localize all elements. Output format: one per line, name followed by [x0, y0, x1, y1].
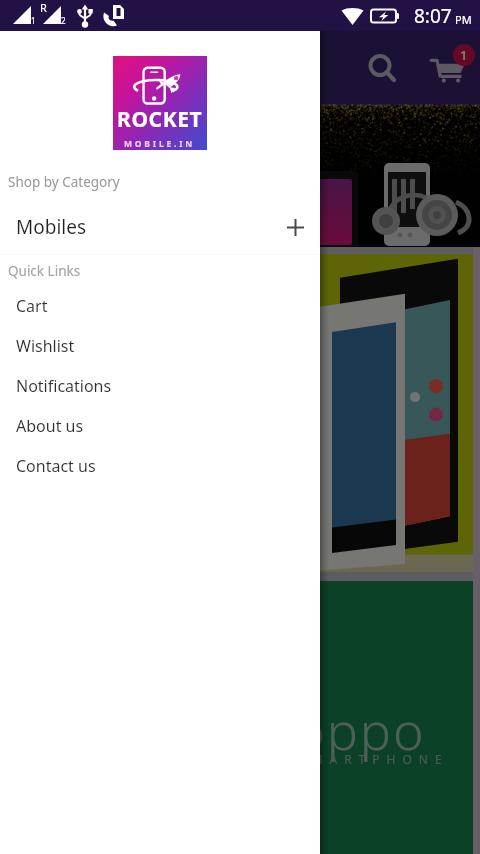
button[interactable]: Mobiles	[0, 208, 320, 246]
staticText: Mobiles	[16, 214, 87, 240]
button[interactable]: Wishlist	[0, 326, 320, 366]
staticText: Shop by Category	[8, 173, 120, 191]
staticText: About us	[16, 415, 84, 437]
staticText: oppo	[294, 694, 426, 765]
button[interactable]: Search	[358, 44, 406, 92]
staticText: R	[40, 0, 47, 15]
button[interactable]: Notifications	[0, 366, 320, 406]
staticText: Wishlist	[16, 335, 75, 357]
staticText: MOBILE.IN	[124, 138, 196, 150]
staticText: 1	[31, 15, 36, 26]
button[interactable]: About us	[0, 406, 320, 446]
button[interactable]: Shopping cart	[424, 44, 472, 92]
staticText: Contact us	[16, 455, 96, 477]
staticText: 1	[460, 46, 468, 64]
staticText: Quick Links	[8, 262, 81, 280]
staticText: Notifications	[16, 375, 112, 397]
staticText: 8:07	[414, 3, 452, 29]
staticText: ROCKET	[117, 105, 203, 134]
staticText: 2	[61, 15, 66, 26]
button[interactable]: Contact us	[0, 446, 320, 486]
staticText: PM	[455, 12, 472, 27]
staticText: Cart	[16, 295, 48, 317]
button[interactable]: Cart	[0, 286, 320, 326]
staticText: SMARTPHONE	[298, 751, 449, 767]
